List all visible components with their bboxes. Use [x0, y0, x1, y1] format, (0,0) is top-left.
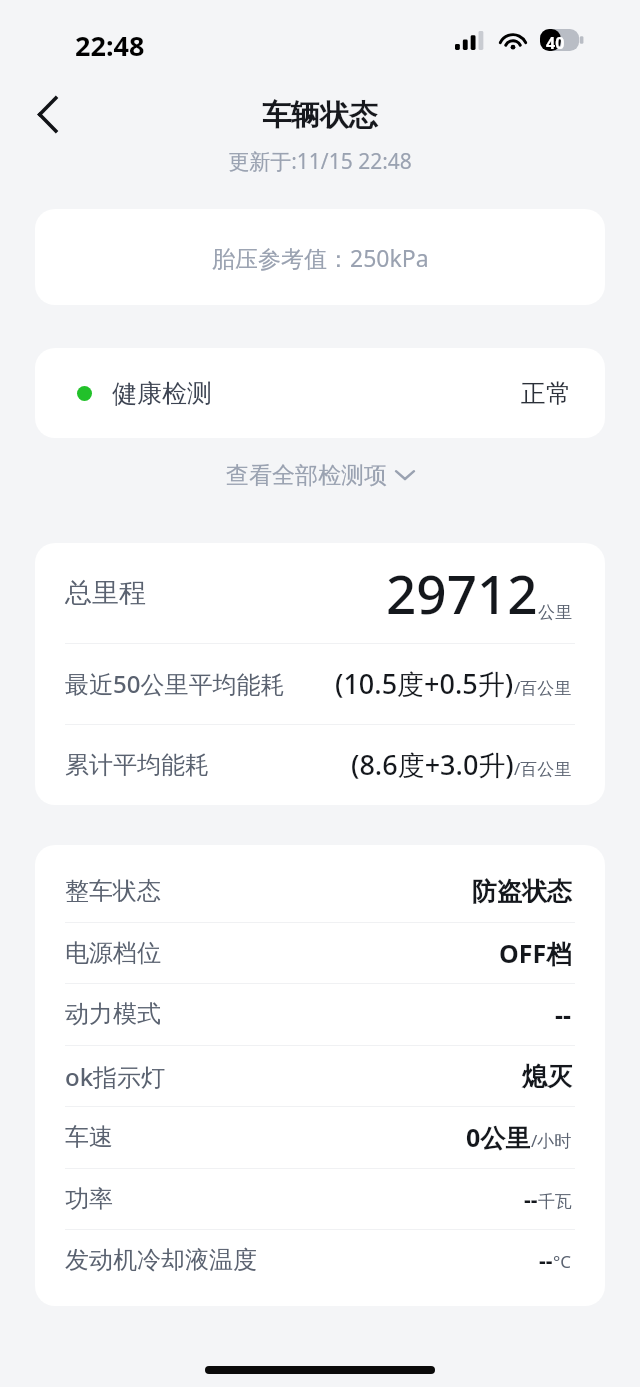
staticText: (10.5度+0.5升)	[335, 665, 514, 702]
staticText: 正常	[521, 378, 571, 409]
staticText: 车速	[65, 1122, 113, 1152]
staticText: 电源档位	[65, 938, 161, 968]
button[interactable]: 整车状态	[35, 860, 605, 922]
staticText: 胎压参考值：250kPa	[212, 242, 429, 273]
staticText: /百公里	[514, 676, 572, 699]
staticText: /小时	[531, 1129, 572, 1152]
staticText: 熄灭	[522, 1061, 572, 1092]
button[interactable]: 查看全部检测项	[0, 452, 640, 498]
staticText: 功率	[65, 1184, 113, 1214]
button[interactable]: 功率	[35, 1168, 605, 1230]
staticText: --	[524, 1185, 538, 1214]
staticText: 累计平均能耗	[65, 750, 209, 780]
staticText: 29712	[386, 557, 538, 629]
button[interactable]: 最近50公里平均能耗	[35, 643, 605, 724]
staticText: 总里程	[65, 576, 146, 610]
staticText: 健康检测	[112, 378, 212, 409]
staticText: 最近50公里平均能耗	[65, 667, 285, 700]
staticText: 防盗状态	[472, 876, 572, 907]
staticText: /百公里	[514, 757, 572, 780]
staticText: --	[555, 997, 572, 1031]
staticText: 22:48	[75, 27, 145, 64]
staticText: --	[539, 1246, 553, 1275]
staticText: °C	[553, 1250, 572, 1273]
button[interactable]: 发动机冷却液温度	[35, 1229, 605, 1291]
staticText: 0公里	[466, 1120, 531, 1154]
staticText: 40	[546, 32, 565, 54]
staticText: 更新于:11/15 22:48	[0, 147, 640, 176]
staticText: 发动机冷却液温度	[65, 1245, 257, 1275]
button[interactable]: 电源档位	[35, 922, 605, 984]
button[interactable]: 车速	[35, 1106, 605, 1168]
staticText: 千瓦	[538, 1191, 572, 1212]
button[interactable]: 总里程	[35, 543, 605, 643]
staticText: 车辆状态	[0, 97, 640, 134]
staticText: 整车状态	[65, 876, 161, 906]
staticText: (8.6度+3.0升)	[351, 746, 514, 783]
button[interactable]: Back	[16, 82, 80, 146]
staticText: 查看全部检测项	[226, 461, 387, 490]
button[interactable]: ok指示灯	[35, 1045, 605, 1107]
staticText: OFF档	[499, 936, 572, 970]
staticText: 公里	[538, 602, 572, 623]
button[interactable]: 胎压参考值：250kPa	[35, 209, 605, 305]
button[interactable]: 累计平均能耗	[35, 724, 605, 805]
staticText: ok指示灯	[65, 1060, 166, 1093]
button[interactable]: 动力模式	[35, 983, 605, 1045]
staticText: 动力模式	[65, 999, 161, 1029]
button[interactable]: 健康检测	[35, 348, 605, 438]
